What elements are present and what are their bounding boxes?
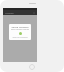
staticText: Nearby	[5, 11, 14, 14]
button[interactable]: Home	[29, 64, 35, 70]
staticText: with friends nearby	[9, 28, 31, 31]
staticText: Turn on sharing	[9, 36, 31, 39]
button[interactable]: Share Location	[9, 24, 31, 40]
button[interactable]: Share	[19, 32, 22, 35]
button[interactable]: Nearby	[3, 10, 37, 15]
staticText: Share Location	[9, 25, 31, 28]
